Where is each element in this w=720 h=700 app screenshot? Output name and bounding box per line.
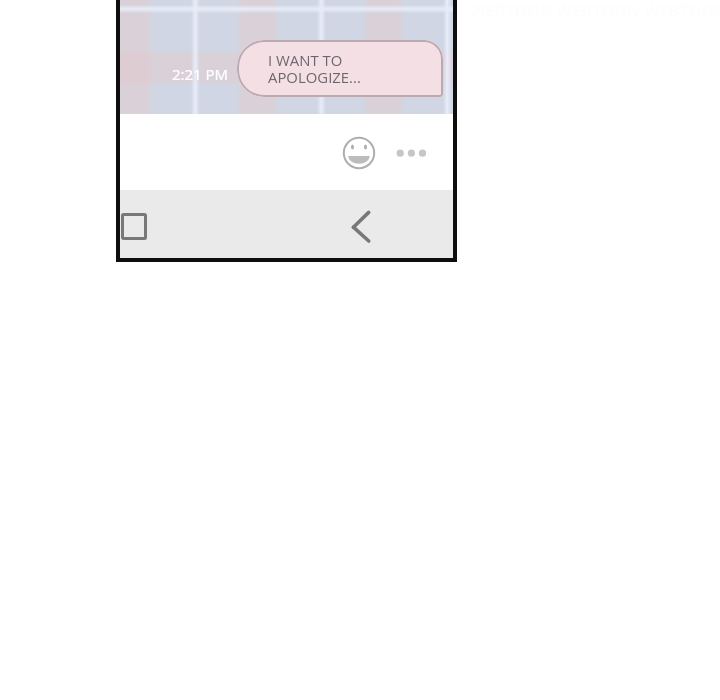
button[interactable]: More options	[393, 144, 433, 162]
button[interactable]: Recent apps	[121, 213, 147, 240]
staticText: 2:21 PM	[172, 64, 229, 84]
button[interactable]: I WANT TO APOLOGIZE...	[237, 40, 443, 97]
button[interactable]: Emoji reaction	[341, 135, 377, 171]
staticText: I WANT TO APOLOGIZE...	[268, 50, 361, 88]
button[interactable]: Back	[343, 202, 379, 254]
